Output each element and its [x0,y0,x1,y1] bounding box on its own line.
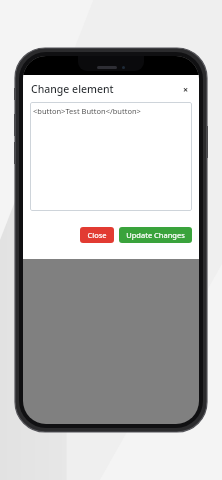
button[interactable]: <button>Test Button</button> [30,102,192,211]
staticText: Change element [31,82,114,96]
staticText: <button>Test Button</button> [33,106,141,116]
staticText: Update Changes [126,230,185,240]
button[interactable]: Update Changes [119,227,192,243]
staticText: Close [87,230,107,240]
button[interactable]: Close [80,227,114,243]
button[interactable]: Close dialog [179,82,193,96]
staticText: × [183,83,189,95]
